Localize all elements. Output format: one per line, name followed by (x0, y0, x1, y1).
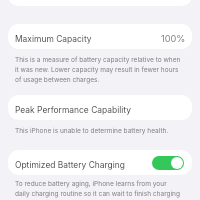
staticText: Optimized Battery Charging (15, 160, 125, 170)
button[interactable]: Optimized Battery Charging (8, 150, 192, 175)
staticText: 100% (161, 33, 186, 44)
staticText: To reduce battery aging, iPhone learns f… (15, 180, 180, 198)
staticText: Peak Performance Capability (15, 105, 131, 115)
staticText: This iPhone is unable to determine batte… (15, 127, 169, 135)
staticText: Maximum Capacity (15, 34, 92, 44)
button[interactable]: Optimized Battery Charging toggle (152, 156, 184, 170)
staticText: This is a measure of battery capacity re… (15, 56, 182, 84)
button[interactable]: Maximum Capacity (8, 24, 192, 49)
button[interactable]: Peak Performance Capability (8, 95, 192, 120)
